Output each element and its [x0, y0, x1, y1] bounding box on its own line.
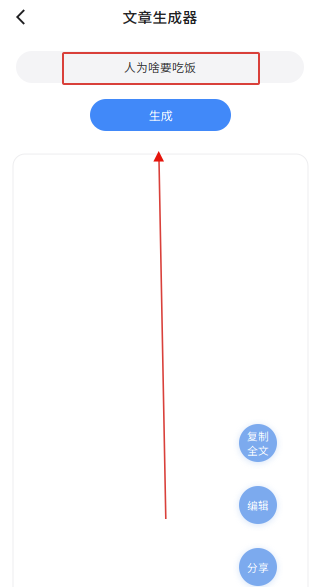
staticText: 复制	[247, 428, 269, 443]
staticText: 人为啥要吃饭	[124, 58, 196, 75]
staticText: 文章生成器	[122, 6, 197, 27]
staticText: 全文	[247, 442, 269, 458]
staticText: 生成	[148, 106, 172, 124]
staticText: 编辑	[247, 497, 269, 513]
button[interactable]: 编辑	[239, 486, 277, 524]
button[interactable]: 人为啥要吃饭	[16, 51, 304, 83]
button[interactable]: 生成	[90, 99, 231, 131]
staticText: 分享	[247, 559, 269, 575]
button[interactable]: 返回	[4, 0, 38, 34]
button[interactable]: 分享	[239, 548, 277, 586]
button[interactable]: 复制全文	[239, 424, 277, 462]
